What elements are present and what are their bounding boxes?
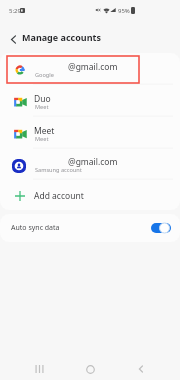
button[interactable]: @gmail.com bbox=[0, 53, 180, 85]
staticText: Auto sync data bbox=[11, 223, 60, 233]
staticText: Meet bbox=[35, 135, 49, 143]
button[interactable]: Meet bbox=[0, 117, 180, 149]
staticText: Google bbox=[35, 71, 54, 79]
button[interactable]: Add account bbox=[0, 180, 180, 210]
button[interactable]: Back bbox=[132, 360, 150, 378]
button[interactable]: Duo bbox=[0, 85, 180, 117]
staticText: 95% bbox=[118, 7, 130, 15]
staticText: @gmail.com bbox=[68, 61, 118, 73]
staticText: Meet bbox=[34, 125, 55, 137]
staticText: Meet bbox=[35, 103, 49, 111]
button[interactable]: Home bbox=[81, 360, 99, 378]
staticText: Samsung account bbox=[35, 166, 82, 174]
button[interactable]: Navigate up bbox=[4, 30, 23, 49]
staticText: Duo bbox=[34, 93, 51, 105]
button[interactable]: Recent apps bbox=[30, 360, 48, 378]
staticText: Add account bbox=[34, 190, 84, 202]
staticText: 5:29 bbox=[9, 7, 21, 15]
button[interactable]: @gmail.com bbox=[0, 148, 180, 180]
staticText: Manage accounts bbox=[22, 31, 101, 43]
button[interactable]: Auto sync data bbox=[0, 214, 180, 242]
staticText: @gmail.com bbox=[68, 156, 118, 168]
